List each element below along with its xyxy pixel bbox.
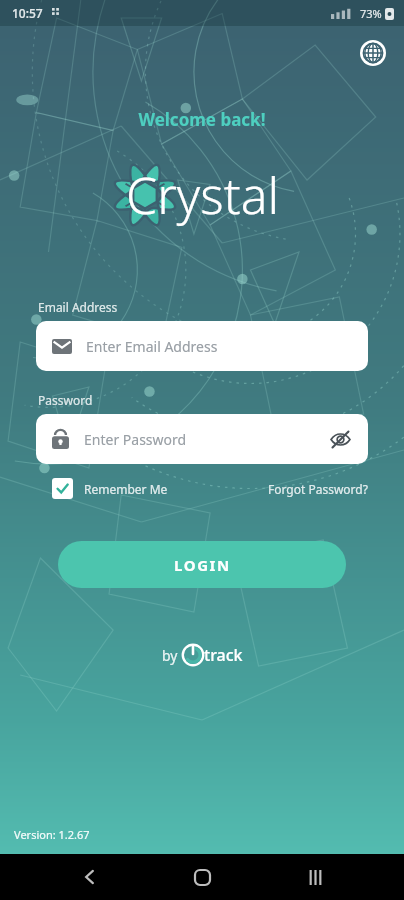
staticText: 10:57 [12,5,43,21]
button[interactable]: Remember Me [52,478,168,499]
button[interactable]: Recent apps [292,854,338,900]
staticText: Email Address [38,299,118,315]
staticText: Crystal [126,161,280,229]
button[interactable]: Enter Email Address [36,321,368,371]
button[interactable]: LOGIN [58,541,346,588]
staticText: Forgot Password? [268,481,368,497]
button[interactable]: Forgot Password? [268,481,368,497]
button[interactable]: Home [179,854,225,900]
staticText: Enter Email Address [86,337,218,356]
staticText: by [162,646,182,665]
staticText: Password [38,392,93,408]
staticText: LOGIN [174,555,231,575]
staticText: track [204,644,243,666]
staticText: Remember Me [84,481,168,497]
staticText: 73% [360,6,382,21]
staticText: Version: 1.2.67 [14,827,90,842]
staticText: Enter Password [84,430,326,449]
button[interactable]: Enter Password [36,414,368,464]
button[interactable]: Change language [358,38,388,68]
button[interactable]: Back [67,854,113,900]
button[interactable]: Show password [326,425,354,453]
staticText: Welcome back! [0,108,404,131]
